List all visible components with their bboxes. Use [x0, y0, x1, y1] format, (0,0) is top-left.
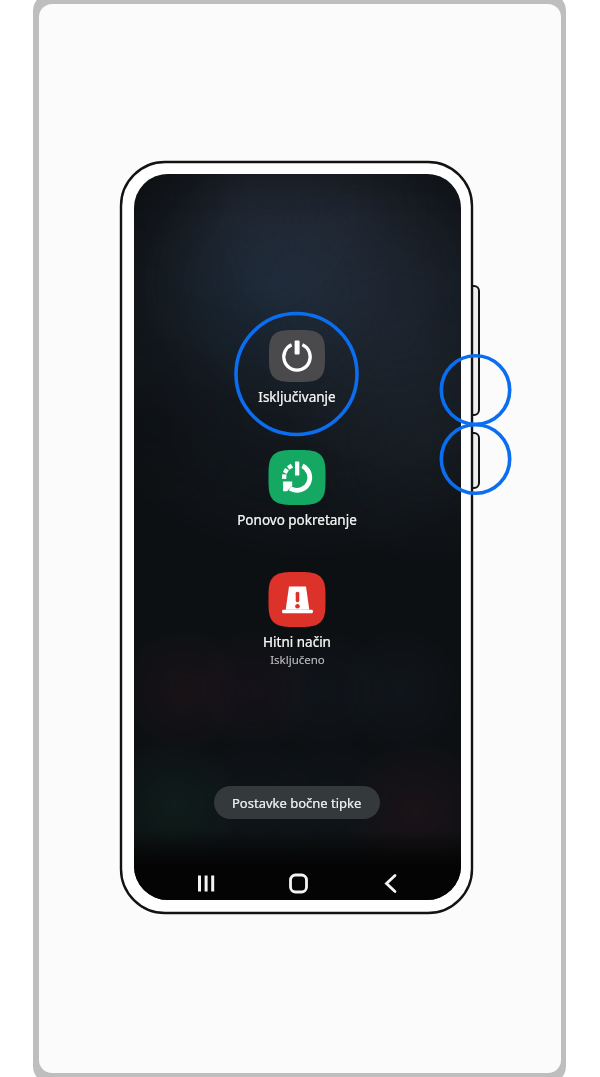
button[interactable]: Power off — [217, 323, 377, 409]
staticText: Isključeno — [270, 652, 325, 668]
button[interactable]: Restart — [217, 443, 377, 532]
staticText: Isključivanje — [258, 388, 336, 406]
staticText: Hitni način — [263, 633, 331, 651]
staticText: Ponovo pokretanje — [237, 511, 357, 529]
staticText: Postavke bočne tipke — [232, 794, 362, 812]
button[interactable]: Emergency mode — [217, 565, 377, 670]
button[interactable]: Postavke bočne tipke — [214, 786, 380, 819]
